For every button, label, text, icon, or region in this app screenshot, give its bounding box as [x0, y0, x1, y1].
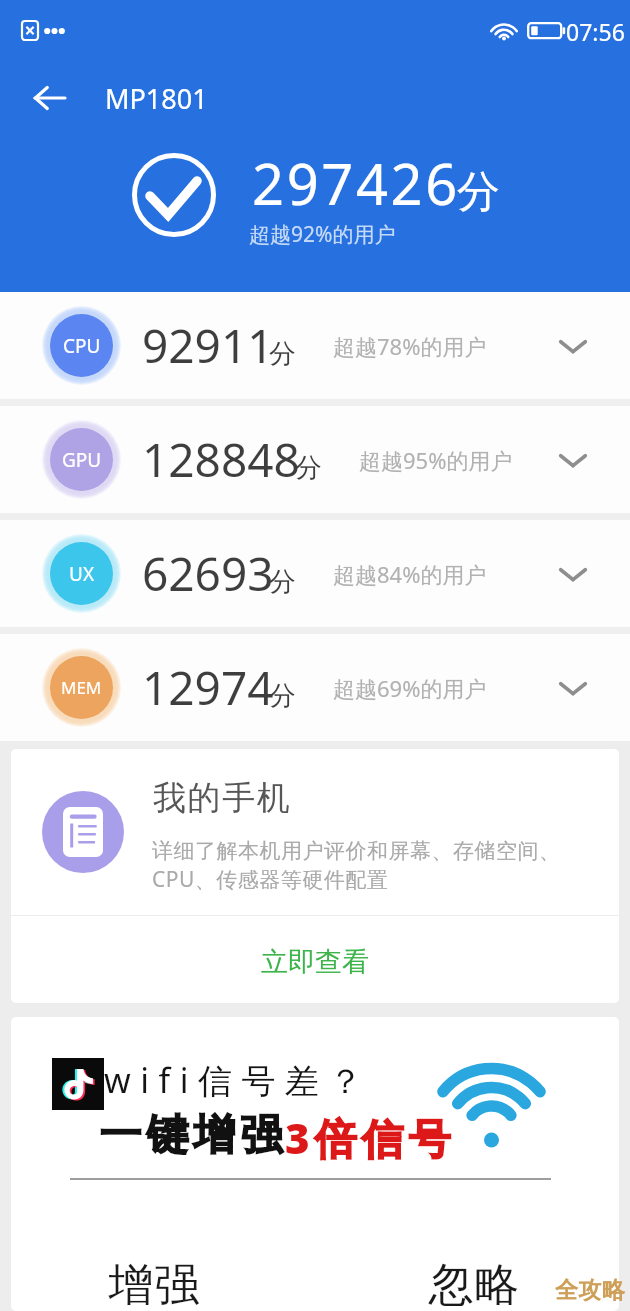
button[interactable]: Back [24, 72, 76, 124]
button[interactable]: MEM [0, 634, 630, 741]
button[interactable]: Expand [548, 435, 598, 485]
staticText: 超越69%的用户 [333, 673, 487, 703]
staticText: 12974 [142, 656, 274, 719]
staticText: 增强 [108, 1257, 200, 1311]
staticText: 一键增强 [97, 1109, 285, 1162]
button[interactable]: Expand [548, 321, 598, 371]
button[interactable]: 忽略 [414, 1249, 534, 1311]
button[interactable]: 我的手机 [11, 749, 619, 915]
staticText: 超越78%的用户 [333, 331, 487, 361]
staticText: 分 [269, 565, 296, 599]
staticText: 超越84%的用户 [333, 559, 487, 589]
staticText: 3倍信号 [285, 1109, 456, 1166]
staticText: 立即查看 [261, 945, 369, 979]
button[interactable]: GPU [0, 406, 630, 513]
staticText: 62693 [142, 542, 274, 605]
staticText: 分 [457, 165, 500, 219]
button[interactable]: Expand [548, 663, 598, 713]
staticText: 07:56 [566, 16, 625, 47]
staticText: CPU [63, 333, 101, 359]
button[interactable]: wifi信号差？ [11, 1017, 619, 1311]
button[interactable]: CPU [0, 292, 630, 399]
staticText: 忽略 [428, 1257, 520, 1311]
button[interactable]: UX [0, 520, 630, 627]
staticText: 我的手机 [153, 777, 292, 819]
button[interactable]: 增强 [94, 1249, 214, 1311]
staticText: MP1801 [105, 80, 208, 117]
button[interactable]: 立即查看 [11, 916, 619, 1003]
staticText: 92911 [142, 314, 274, 377]
staticText: MEM [61, 676, 102, 699]
staticText: 分 [269, 679, 296, 713]
staticText: 超越92%的用户 [249, 220, 396, 249]
staticText: 128848 [142, 428, 300, 491]
staticText: 297426 [252, 145, 460, 221]
staticText: 分 [269, 337, 296, 371]
staticText: GPU [62, 447, 102, 473]
staticText: 分 [295, 451, 322, 485]
staticText: 全攻略 [555, 1276, 626, 1305]
staticText: 详细了解本机用户评价和屏幕、存储空间、 CPU、传感器等硬件配置 [152, 838, 561, 893]
button[interactable]: Expand [548, 549, 598, 599]
staticText: wifi信号差？ [104, 1057, 372, 1103]
staticText: 超越95%的用户 [359, 445, 513, 475]
staticText: UX [69, 561, 95, 587]
